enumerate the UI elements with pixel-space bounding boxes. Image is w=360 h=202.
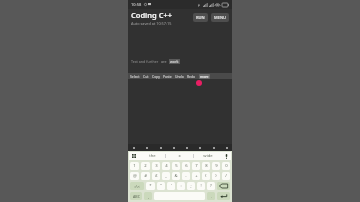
staticText: ' <box>171 183 172 189</box>
button[interactable]: ' <box>167 182 175 190</box>
button[interactable]: 0 <box>222 162 230 170</box>
button[interactable]: Cut <box>143 74 149 79</box>
button[interactable]: 2 <box>141 162 150 170</box>
staticText: 4 <box>165 163 168 169</box>
button[interactable]: the <box>139 152 165 160</box>
staticText: Copy <box>152 74 160 79</box>
staticText: 5 <box>175 163 178 169</box>
button[interactable]: Keyboard switcher <box>129 152 139 160</box>
button[interactable]: Backspace <box>217 182 230 190</box>
staticText: : <box>180 183 182 189</box>
button[interactable]: ) <box>212 172 220 180</box>
staticText: @ <box>133 173 137 179</box>
button[interactable]: - <box>182 172 190 180</box>
button[interactable]: Tool 4 <box>185 146 188 149</box>
button[interactable]: 9 <box>212 162 220 170</box>
button[interactable]: Tool 7 <box>225 146 228 149</box>
staticText: 0 <box>225 163 228 169</box>
button[interactable]: & <box>172 172 180 180</box>
staticText: 2 <box>144 163 147 169</box>
button[interactable]: Undo <box>175 74 184 79</box>
button[interactable]: Redo <box>187 74 196 79</box>
button[interactable]: x <box>166 152 193 160</box>
button[interactable]: Select <box>130 74 140 79</box>
staticText: . <box>211 194 212 199</box>
staticText: more <box>200 74 209 79</box>
staticText: Undo <box>175 74 184 79</box>
button[interactable]: * <box>146 182 155 190</box>
staticText: Paste <box>163 74 172 79</box>
button[interactable]: 8 <box>202 162 210 170</box>
button[interactable]: " <box>157 182 165 190</box>
staticText: + <box>195 173 198 179</box>
button[interactable]: more <box>199 74 210 79</box>
staticText: are <box>161 59 167 64</box>
staticText: , <box>148 194 149 199</box>
staticText: Auto saved at 10:57:15 <box>131 21 172 26</box>
staticText: ; <box>190 183 192 189</box>
button[interactable]: Voice input <box>221 152 231 160</box>
button[interactable]: 4 <box>162 162 170 170</box>
button[interactable]: 6 <box>182 162 190 170</box>
button[interactable]: : <box>177 182 185 190</box>
staticText: 3 <box>155 163 158 169</box>
staticText: 1 <box>133 163 136 169</box>
button[interactable]: 1 <box>130 162 139 170</box>
staticText: 10:58 <box>131 2 142 7</box>
button[interactable]: ( <box>202 172 210 180</box>
button[interactable]: # <box>141 172 150 180</box>
staticText: MENU <box>214 15 226 20</box>
staticText: x <box>178 153 181 159</box>
staticText: ! <box>200 183 202 189</box>
button[interactable]: @ <box>130 172 139 180</box>
button[interactable]: wide <box>194 152 221 160</box>
button[interactable]: £ <box>152 172 160 180</box>
button[interactable]: Tool 2 <box>159 146 162 149</box>
staticText: wide <box>203 153 213 159</box>
staticText: & <box>174 173 178 179</box>
button[interactable]: ! <box>197 182 205 190</box>
button[interactable]: + <box>192 172 200 180</box>
staticText: Cut <box>143 74 149 79</box>
staticText: work <box>170 59 179 64</box>
staticText: ( <box>205 173 207 179</box>
staticText: Coding C++ <box>131 10 173 20</box>
button[interactable]: Tool 0 <box>132 146 135 149</box>
staticText: " <box>160 183 162 189</box>
staticText: * <box>149 183 152 189</box>
button[interactable]: ; <box>187 182 195 190</box>
button[interactable]: ABC <box>130 192 142 200</box>
staticText: / <box>225 173 227 179</box>
staticText: 7 <box>195 163 198 169</box>
button[interactable]: , <box>144 192 152 200</box>
staticText: £ <box>155 173 158 179</box>
button[interactable]: RUN <box>193 13 208 22</box>
button[interactable]: / <box>222 172 230 180</box>
staticText: Select <box>130 74 140 79</box>
staticText: RUN <box>196 15 205 20</box>
button[interactable]: ? <box>207 182 215 190</box>
staticText: ) <box>215 173 217 179</box>
button[interactable]: Paste <box>163 74 172 79</box>
button[interactable]: 5 <box>172 162 180 170</box>
button[interactable]: Enter <box>217 192 230 200</box>
button[interactable]: 3 <box>152 162 160 170</box>
button[interactable]: Tool 1 <box>145 146 148 149</box>
staticText: =\< <box>134 184 140 189</box>
staticText: Text and further <box>131 59 159 64</box>
staticText: 8 <box>205 163 208 169</box>
staticText: _ <box>165 173 167 179</box>
button[interactable]: MENU <box>211 13 229 22</box>
button[interactable]: =\< <box>130 182 144 190</box>
button[interactable]: . <box>207 192 215 200</box>
button[interactable]: 7 <box>192 162 200 170</box>
button[interactable]: Tool 3 <box>172 146 175 149</box>
staticText: Redo <box>187 74 196 79</box>
staticText: # <box>144 173 147 179</box>
button[interactable]: Tool 5 <box>198 146 201 149</box>
button[interactable]: _ <box>162 172 170 180</box>
staticText: 6 <box>185 163 188 169</box>
button[interactable]: Tool 6 <box>212 146 215 149</box>
button[interactable]: Copy <box>152 74 160 79</box>
